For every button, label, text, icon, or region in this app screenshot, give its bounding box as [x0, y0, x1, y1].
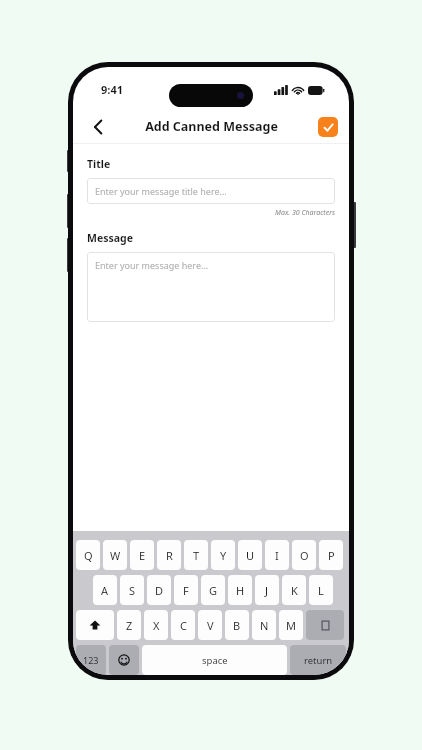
staticText: M: [286, 618, 296, 633]
staticText: 123: [83, 654, 99, 666]
staticText: W: [110, 548, 121, 563]
staticText: L: [318, 583, 324, 598]
staticText: C: [180, 618, 187, 633]
staticText: Enter your message title here...: [95, 185, 227, 197]
staticText: B: [233, 618, 241, 633]
button[interactable]: space: [142, 645, 287, 675]
button[interactable]: K: [282, 575, 306, 605]
staticText: Title: [87, 157, 111, 171]
button[interactable]: T: [184, 540, 208, 570]
staticText: Q: [84, 548, 93, 563]
button[interactable]: J: [255, 575, 279, 605]
button[interactable]: U: [238, 540, 262, 570]
staticText: V: [207, 618, 214, 633]
staticText: H: [236, 583, 245, 598]
staticText: U: [246, 548, 255, 563]
staticText: X: [153, 618, 160, 633]
button[interactable]: P: [319, 540, 343, 570]
button[interactable]: V: [198, 610, 222, 640]
staticText: A: [101, 583, 109, 598]
button[interactable]: O: [292, 540, 316, 570]
staticText: T: [193, 548, 200, 563]
staticText: Y: [220, 548, 227, 563]
button[interactable]: E: [130, 540, 154, 570]
staticText: F: [183, 583, 189, 598]
staticText: D: [155, 583, 164, 598]
button[interactable]: 123: [76, 645, 106, 675]
staticText: I: [275, 548, 279, 563]
button[interactable]: Backspace: [306, 610, 344, 640]
staticText: E: [139, 548, 146, 563]
button[interactable]: C: [171, 610, 195, 640]
staticText: G: [209, 583, 218, 598]
staticText: P: [328, 548, 335, 563]
staticText: O: [300, 548, 309, 563]
button[interactable]: M: [279, 610, 303, 640]
staticText: R: [166, 548, 173, 563]
button[interactable]: Shift: [76, 610, 114, 640]
staticText: Z: [126, 618, 133, 633]
button[interactable]: G: [201, 575, 225, 605]
button[interactable]: Save: [318, 117, 338, 137]
button[interactable]: return: [290, 645, 346, 675]
button[interactable]: R: [157, 540, 181, 570]
button[interactable]: N: [252, 610, 276, 640]
button[interactable]: B: [225, 610, 249, 640]
staticText: N: [260, 618, 269, 633]
staticText: Enter your message here...: [95, 259, 209, 271]
button[interactable]: I: [265, 540, 289, 570]
button[interactable]: A: [93, 575, 117, 605]
staticText: Message: [87, 231, 133, 245]
button[interactable]: Q: [76, 540, 100, 570]
staticText: Max. 30 Characters: [87, 208, 335, 218]
staticText: K: [291, 583, 298, 598]
button[interactable]: D: [147, 575, 171, 605]
button[interactable]: W: [103, 540, 127, 570]
button[interactable]: L: [309, 575, 333, 605]
staticText: Add Canned Message: [145, 118, 278, 135]
button[interactable]: S: [120, 575, 144, 605]
staticText: space: [202, 654, 228, 667]
button[interactable]: F: [174, 575, 198, 605]
button[interactable]: H: [228, 575, 252, 605]
staticText: J: [265, 583, 269, 598]
button[interactable]: Enter your message here...: [87, 252, 335, 322]
button[interactable]: Emoji: [109, 645, 139, 675]
staticText: return: [304, 654, 333, 667]
button[interactable]: X: [144, 610, 168, 640]
button[interactable]: Enter your message title here...: [87, 178, 335, 204]
staticText: 9:41: [101, 82, 123, 97]
button[interactable]: Back: [85, 114, 111, 140]
button[interactable]: Z: [117, 610, 141, 640]
staticText: S: [129, 583, 136, 598]
button[interactable]: Y: [211, 540, 235, 570]
